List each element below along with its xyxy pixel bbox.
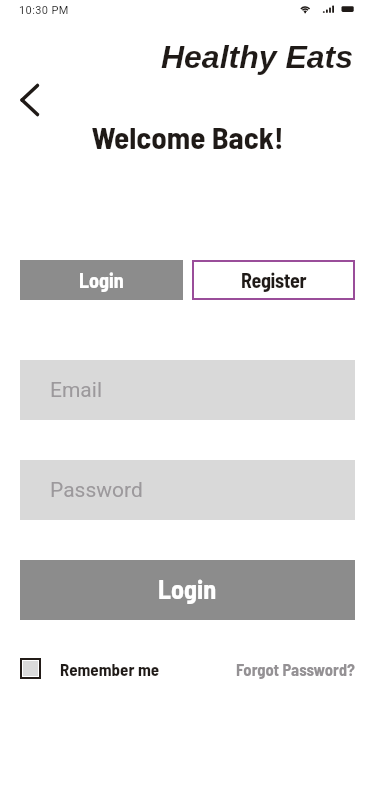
button[interactable]: Login xyxy=(20,260,183,300)
staticText: Login xyxy=(79,268,124,292)
button[interactable]: Login xyxy=(20,560,355,620)
staticText: Forgot Password? xyxy=(236,659,355,679)
staticText: Email xyxy=(50,378,102,403)
staticText: Welcome Back! xyxy=(0,118,375,155)
staticText: Healthy Eats xyxy=(0,39,353,75)
staticText: 10:30 PM xyxy=(19,4,69,17)
staticText: Remember me xyxy=(60,659,160,679)
staticText: Password xyxy=(50,478,143,503)
button[interactable]: Register xyxy=(192,260,355,300)
button[interactable]: Remember me xyxy=(20,658,160,679)
staticText: Login xyxy=(158,573,217,604)
button[interactable]: Password xyxy=(20,460,355,520)
button[interactable]: Forgot Password? xyxy=(236,659,355,679)
button[interactable]: Back xyxy=(8,78,52,122)
button[interactable]: Email xyxy=(20,360,355,420)
staticText: Register xyxy=(241,268,307,292)
